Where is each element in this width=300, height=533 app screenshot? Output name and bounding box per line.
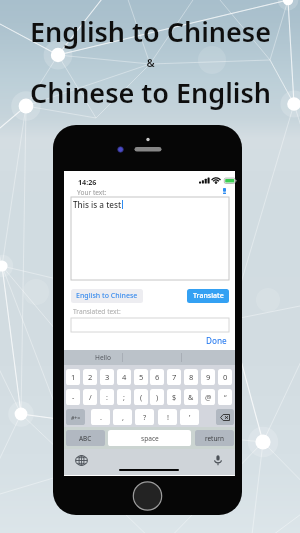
button[interactable]: Translate [187,289,229,303]
staticText: ( [140,392,143,402]
staticText: . [100,412,102,422]
button[interactable]: ! [158,409,177,425]
button[interactable]: 5 [134,369,148,385]
button[interactable]: 1 [66,369,80,385]
staticText: ABC [79,434,92,443]
staticText: 3 [105,372,110,382]
button[interactable]: 6 [150,369,164,385]
staticText: 8 [189,372,194,382]
staticText: - [72,392,75,402]
button[interactable]: #+= [66,409,85,425]
button[interactable]: space [108,430,191,446]
staticText: & [146,55,155,70]
staticText: 7 [172,372,177,382]
button[interactable]: 4 [117,369,131,385]
staticText: space [141,434,159,443]
staticText: return [205,434,224,443]
button[interactable]: ( [134,389,148,405]
button[interactable]: ’ [180,409,199,425]
staticText: @ [205,392,212,402]
staticText: Done [206,335,227,346]
staticText: Hello [95,353,111,362]
staticText: ) [156,392,159,402]
staticText: 2 [88,372,93,382]
staticText: English to Chinese [30,13,271,50]
button[interactable]: : [100,389,114,405]
button[interactable]: . [91,409,110,425]
button[interactable]: , [113,409,132,425]
staticText: ’ [189,412,191,422]
button[interactable]: & [184,389,198,405]
staticText: English to Chinese [76,291,138,301]
staticText: This is a test [73,199,122,210]
staticText: 6 [155,372,160,382]
button[interactable]: English to Chinese [71,289,143,303]
button[interactable]: 3 [100,369,114,385]
button[interactable]: / [83,389,97,405]
button[interactable]: 2 [83,369,97,385]
staticText: “ [224,392,227,402]
button[interactable]: $ [167,389,181,405]
staticText: 1 [71,372,76,382]
button[interactable]: ) [150,389,164,405]
button[interactable]: Hello [64,350,123,365]
button[interactable]: Warning [223,188,226,194]
staticText: / [89,392,92,402]
button[interactable]: return [195,430,234,446]
button[interactable]: Switch keyboard [75,455,88,466]
button[interactable]: ABC [66,430,105,446]
button[interactable]: Backspace [216,409,234,425]
staticText: , [122,412,124,422]
staticText: #+= [71,414,81,421]
staticText: Your text: [77,188,107,197]
button[interactable]: 8 [184,369,198,385]
staticText: Translated text: [73,307,121,316]
button[interactable]: 9 [201,369,215,385]
staticText: 4 [122,372,127,382]
staticText: : [106,392,108,402]
staticText: ; [123,392,125,402]
button[interactable]: @ [201,389,215,405]
button[interactable]: - [66,389,80,405]
staticText: & [188,392,194,402]
staticText: ! [167,412,169,422]
staticText: $ [172,392,177,402]
staticText: 9 [206,372,211,382]
staticText: Chinese to English [30,74,271,111]
button[interactable]: Done [204,335,229,346]
button[interactable]: ? [135,409,154,425]
staticText: Translate [193,291,224,301]
staticText: 5 [139,372,144,382]
button[interactable]: ; [117,389,131,405]
button[interactable]: Dictation [214,455,222,466]
staticText: ? [143,412,147,422]
staticText: 0 [223,372,228,382]
button[interactable]: 7 [167,369,181,385]
button[interactable]: “ [218,389,232,405]
staticText: 14:26 [78,177,97,187]
button[interactable]: 0 [218,369,232,385]
